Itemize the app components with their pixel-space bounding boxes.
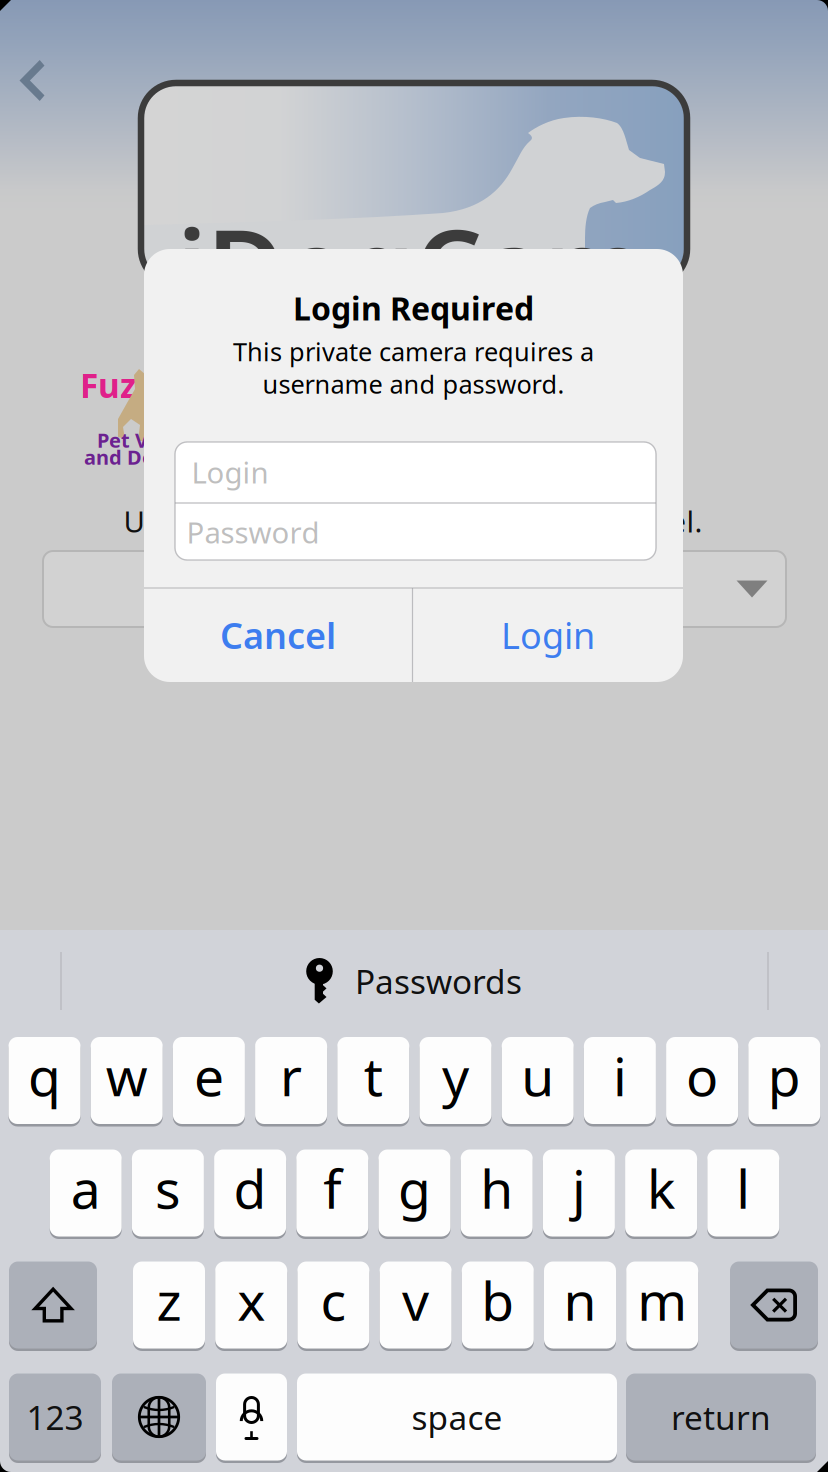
button[interactable]: j: [543, 1147, 615, 1238]
button[interactable]: q: [8, 1035, 80, 1126]
button[interactable]: Login: [413, 588, 683, 682]
staticText: a: [71, 1153, 101, 1223]
button[interactable]: r: [255, 1035, 327, 1126]
button[interactable]: n: [544, 1259, 616, 1350]
staticText: n: [563, 1265, 596, 1335]
staticText: d: [234, 1153, 267, 1223]
button[interactable]: o: [666, 1035, 738, 1126]
button[interactable]: 123: [9, 1371, 101, 1462]
button[interactable]: y: [419, 1035, 491, 1126]
staticText: Use the menu to select a camera channel.: [123, 501, 702, 540]
staticText: Login: [501, 611, 595, 659]
staticText: g: [398, 1153, 431, 1223]
button[interactable]: g: [378, 1147, 450, 1238]
button[interactable]: d: [214, 1147, 286, 1238]
button[interactable]: [730, 1259, 818, 1350]
staticText: q: [28, 1040, 61, 1111]
button[interactable]: s: [132, 1147, 204, 1238]
staticText: and Doggie Daycare: [84, 444, 285, 470]
staticText: r: [280, 1040, 302, 1111]
staticText: This private camera requires a: [233, 335, 594, 368]
button[interactable]: space: [297, 1371, 617, 1462]
staticText: x: [237, 1265, 265, 1335]
button[interactable]: a: [50, 1147, 122, 1238]
button[interactable]: m: [626, 1259, 698, 1350]
staticText: y: [442, 1040, 469, 1111]
staticText: username and password.: [262, 367, 564, 401]
staticText: j: [572, 1153, 586, 1223]
staticText: t: [364, 1040, 383, 1111]
staticText: return: [671, 1395, 771, 1439]
staticText: Password: [186, 512, 319, 551]
staticText: Login: [191, 452, 268, 491]
staticText: h: [480, 1153, 513, 1223]
button[interactable]: [216, 1371, 287, 1462]
staticText: b: [481, 1265, 514, 1335]
staticText: Pet Villa & Spa: [97, 427, 239, 453]
staticText: 123: [26, 1395, 83, 1439]
staticText: z: [156, 1265, 181, 1335]
button[interactable]: Back: [0, 34, 70, 126]
button[interactable]: b: [462, 1259, 534, 1350]
button[interactable]: c: [297, 1259, 369, 1350]
button[interactable]: return: [626, 1371, 816, 1462]
button[interactable]: Cancel: [144, 588, 412, 682]
staticText: Cancel: [220, 611, 336, 659]
staticText: p: [768, 1040, 801, 1111]
staticText: Login Required: [293, 287, 534, 329]
staticText: iDogCam: [177, 195, 645, 335]
staticText: c: [320, 1265, 346, 1335]
button[interactable]: u: [502, 1035, 574, 1126]
staticText: e: [194, 1040, 224, 1111]
button[interactable]: x: [215, 1259, 287, 1350]
button[interactable]: z: [133, 1259, 205, 1350]
button[interactable]: l: [707, 1147, 779, 1238]
button[interactable]: [112, 1371, 206, 1462]
button[interactable]: [9, 1259, 97, 1350]
button[interactable]: v: [380, 1259, 452, 1350]
button[interactable]: p: [748, 1035, 820, 1126]
button[interactable]: w: [91, 1035, 163, 1126]
staticText: k: [647, 1153, 675, 1223]
button[interactable]: k: [625, 1147, 697, 1238]
staticText: i: [613, 1040, 627, 1111]
button[interactable]: f: [296, 1147, 368, 1238]
staticText: s: [155, 1153, 181, 1223]
button[interactable]: t: [337, 1035, 409, 1126]
button[interactable]: Passwords: [264, 936, 564, 1026]
staticText: space: [411, 1395, 502, 1439]
staticText: Fuzzy Pawz: [80, 363, 266, 407]
staticText: f: [323, 1153, 341, 1223]
staticText: m: [637, 1265, 687, 1335]
staticText: w: [106, 1040, 148, 1111]
staticText: l: [736, 1153, 750, 1223]
staticText: v: [402, 1265, 429, 1335]
staticText: Passwords: [355, 959, 522, 1003]
button[interactable]: e: [173, 1035, 245, 1126]
staticText: o: [686, 1040, 718, 1111]
staticText: u: [521, 1040, 554, 1111]
button[interactable]: h: [461, 1147, 533, 1238]
button[interactable]: i: [584, 1035, 656, 1126]
